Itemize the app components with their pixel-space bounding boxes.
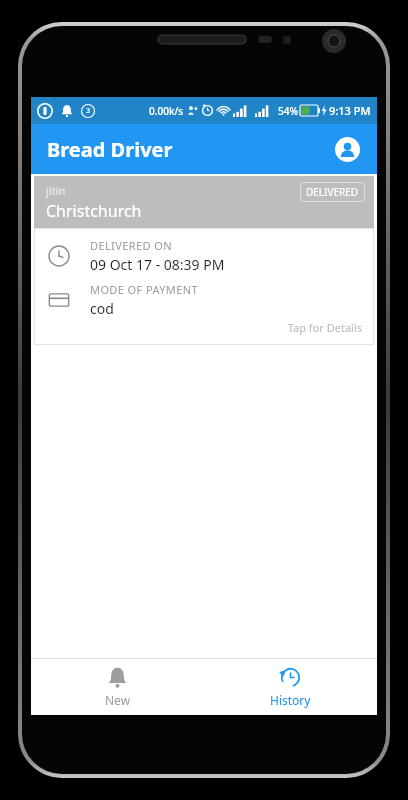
staticText: 0.00k/s [149, 104, 184, 118]
staticText: New [105, 692, 131, 708]
staticText: Christchurch [46, 200, 142, 222]
staticText: cod [90, 299, 114, 318]
staticText: DELIVERED ON [90, 238, 172, 253]
button[interactable]: New [31, 659, 204, 715]
staticText: Bread Driver [47, 136, 173, 163]
staticText: 54% [278, 104, 298, 118]
staticText: 3 [86, 106, 91, 116]
staticText: Tap for Details [34, 320, 362, 335]
staticText: History [270, 692, 311, 708]
staticText: 09 Oct 17 - 08:39 PM [90, 255, 225, 274]
staticText: 9:13 PM [329, 103, 371, 118]
staticText: DELIVERED [306, 185, 359, 199]
button[interactable]: jitin [34, 176, 374, 345]
button[interactable]: Account [331, 133, 363, 165]
staticText: MODE OF PAYMENT [90, 282, 199, 297]
button[interactable]: History [204, 659, 377, 715]
staticText: jitin [46, 183, 66, 198]
